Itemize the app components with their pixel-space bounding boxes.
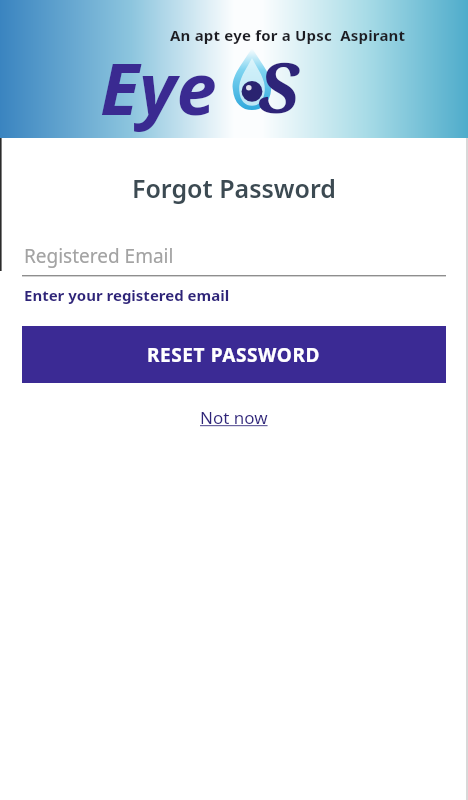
staticText: An apt eye for a Upsc Aspirant [170,25,406,45]
staticText: RESET PASSWORD [147,342,321,368]
button[interactable]: RESET PASSWORD [22,326,446,383]
staticText: Eye [100,38,217,136]
staticText: Enter your registered email [24,285,230,305]
staticText: S [258,38,300,133]
staticText: Not now [200,406,268,429]
staticText: Registered Email [24,243,174,269]
staticText: Forgot Password [0,171,468,205]
button[interactable]: Registered Email [22,236,446,276]
button[interactable]: Not now [194,404,274,431]
